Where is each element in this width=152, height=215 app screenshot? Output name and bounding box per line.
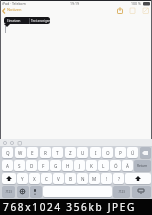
button[interactable]: Ü <box>127 147 138 158</box>
button[interactable] <box>125 173 151 184</box>
button[interactable]: H <box>62 160 73 171</box>
button[interactable] <box>30 186 42 197</box>
staticText: Einsetzen <box>7 19 21 23</box>
staticText: 19:19 <box>70 1 79 6</box>
staticText: C <box>45 176 48 182</box>
staticText: Text anzeigen <box>31 19 50 23</box>
staticText: 768x1024 356kb JPEG <box>3 200 137 214</box>
button[interactable]: Q <box>2 147 13 158</box>
button[interactable]: W <box>15 147 26 158</box>
staticText: K <box>90 163 93 169</box>
button[interactable]: D <box>26 160 37 171</box>
button[interactable]: Z <box>65 147 76 158</box>
button[interactable]: Einsetzen <box>4 17 50 24</box>
button[interactable]: P <box>115 147 126 158</box>
staticText: Notizen <box>7 7 22 12</box>
button[interactable]: Return <box>134 160 151 171</box>
button[interactable]: G <box>50 160 61 171</box>
staticText: E <box>31 150 34 156</box>
staticText: .?123 <box>118 190 125 194</box>
button[interactable]: Y <box>17 173 28 184</box>
staticText: D <box>30 163 34 169</box>
staticText: Ä <box>126 163 129 169</box>
staticText: H <box>66 163 70 169</box>
button[interactable]: K <box>86 160 97 171</box>
button[interactable]: X <box>29 173 40 184</box>
staticText: U <box>81 150 85 156</box>
staticText: J <box>79 163 81 169</box>
staticText: F <box>42 163 45 169</box>
button[interactable]: O <box>102 147 113 158</box>
button[interactable]: R <box>40 147 51 158</box>
staticText: Y <box>21 176 24 182</box>
button[interactable]: Ä <box>122 160 133 171</box>
button[interactable]: L <box>98 160 109 171</box>
staticText: iPad · Telekom <box>2 1 26 6</box>
staticText: .?123 <box>5 190 12 194</box>
staticText: ? <box>118 176 120 182</box>
button[interactable] <box>17 186 29 197</box>
staticText: A <box>6 163 9 169</box>
button[interactable]: V <box>53 173 64 184</box>
button[interactable]: Notizen <box>2 6 24 15</box>
button[interactable]: J <box>74 160 85 171</box>
staticText: Return <box>137 164 148 168</box>
staticText: O <box>106 150 110 156</box>
staticText: I <box>95 150 97 156</box>
staticText: L <box>102 163 105 169</box>
staticText: B <box>69 176 72 182</box>
button[interactable]: S <box>14 160 25 171</box>
staticText: S <box>18 163 21 169</box>
button[interactable]: .?123 <box>2 186 15 197</box>
button[interactable]: C <box>41 173 52 184</box>
staticText: T <box>56 150 59 156</box>
staticText: ! <box>106 176 108 182</box>
button[interactable] <box>140 147 151 158</box>
button[interactable] <box>2 173 16 184</box>
button[interactable]: T <box>52 147 63 158</box>
button[interactable]: .?123 <box>113 186 130 197</box>
staticText: X <box>33 176 36 182</box>
staticText: W <box>18 150 23 156</box>
button[interactable]: A <box>2 160 13 171</box>
button[interactable]: Ö <box>110 160 121 171</box>
button[interactable]: N <box>77 173 88 184</box>
button[interactable] <box>117 7 152 14</box>
staticText: Z <box>69 150 72 156</box>
button[interactable]: F <box>38 160 49 171</box>
button[interactable]: M <box>89 173 100 184</box>
button[interactable]: ? <box>113 173 124 184</box>
button[interactable] <box>43 186 112 197</box>
staticText: Ü <box>131 150 135 156</box>
button[interactable]: U <box>77 147 88 158</box>
staticText: V <box>57 176 60 182</box>
button[interactable]: I <box>90 147 101 158</box>
staticText: 100 % <box>131 1 141 6</box>
button[interactable]: ! <box>101 173 112 184</box>
staticText: Q <box>6 150 10 156</box>
staticText: R <box>44 150 47 156</box>
staticText: P <box>119 150 122 156</box>
staticText: N <box>81 176 85 182</box>
button[interactable] <box>132 186 151 197</box>
button[interactable]: E <box>27 147 38 158</box>
button[interactable]: B <box>65 173 76 184</box>
staticText: M <box>92 176 97 182</box>
staticText: G <box>54 163 58 169</box>
staticText: Ö <box>114 163 118 169</box>
